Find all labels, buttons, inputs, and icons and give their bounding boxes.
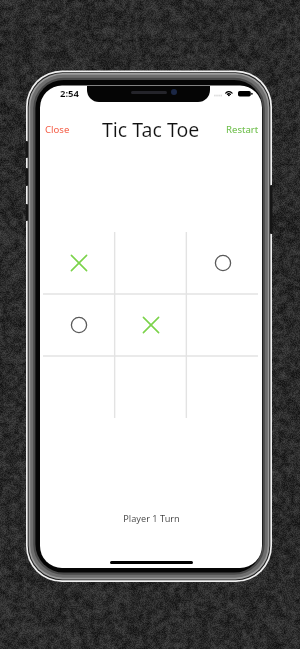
staticText: Restart: [226, 123, 259, 136]
button[interactable]: Cell row 1 column 3, O: [187, 232, 259, 294]
button[interactable]: Close: [40, 116, 98, 142]
staticText: Close: [45, 123, 70, 136]
staticText: Tic Tac Toe: [102, 116, 200, 142]
button[interactable]: Cell row 1 column 2, empty: [115, 232, 187, 294]
button[interactable]: Cell row 3 column 2, empty: [115, 356, 187, 418]
button[interactable]: Restart: [204, 116, 262, 142]
staticText: Player 1 Turn: [123, 512, 180, 525]
button[interactable]: Cell row 2 column 3, empty: [187, 294, 259, 356]
button[interactable]: Cell row 1 column 1, X: [43, 232, 115, 294]
button[interactable]: Cell row 3 column 1, empty: [43, 356, 115, 418]
button[interactable]: Cell row 2 column 1, O: [43, 294, 115, 356]
staticText: 2:54: [60, 87, 79, 99]
button[interactable]: Cell row 2 column 2, X: [115, 294, 187, 356]
